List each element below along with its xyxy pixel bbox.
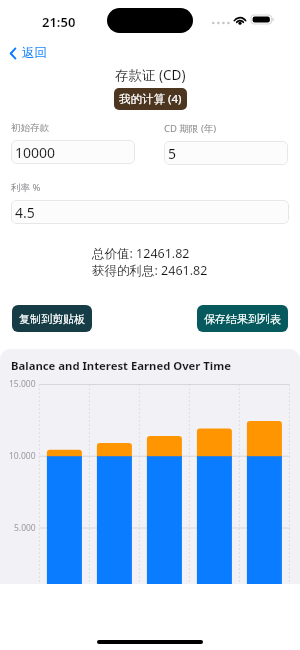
staticText: 10000 bbox=[15, 143, 56, 162]
button[interactable]: 10000 bbox=[11, 140, 135, 164]
staticText: 5 bbox=[168, 144, 177, 163]
staticText: 获得的利息: 2461.82 bbox=[92, 262, 208, 279]
button[interactable]: 保存结果到列表 bbox=[197, 305, 288, 332]
staticText: 初始存款 bbox=[11, 122, 49, 134]
staticText: 复制到剪贴板 bbox=[19, 312, 85, 326]
staticText: 利率 % bbox=[11, 181, 41, 194]
staticText: 保存结果到列表 bbox=[204, 312, 281, 326]
staticText: 21:50 bbox=[42, 13, 76, 31]
button[interactable]: 返回 bbox=[9, 44, 47, 62]
button[interactable]: 我的计算 (4) bbox=[114, 88, 187, 110]
button[interactable]: 5 bbox=[164, 141, 288, 165]
staticText: Balance and Interest Earned Over Time bbox=[11, 358, 231, 373]
staticText: 存款证 (CD) bbox=[115, 66, 186, 84]
staticText: 我的计算 (4) bbox=[119, 91, 182, 107]
staticText: 10.000 bbox=[9, 450, 36, 462]
staticText: 总价值: 12461.82 bbox=[92, 245, 190, 262]
staticText: 4.5 bbox=[15, 203, 35, 222]
staticText: 15.000 bbox=[9, 378, 36, 390]
staticText: CD 期限 (年) bbox=[164, 122, 217, 135]
button[interactable]: 复制到剪贴板 bbox=[12, 305, 92, 332]
button[interactable]: 4.5 bbox=[11, 200, 289, 224]
staticText: 5.000 bbox=[14, 522, 36, 534]
staticText: 返回 bbox=[22, 45, 47, 61]
